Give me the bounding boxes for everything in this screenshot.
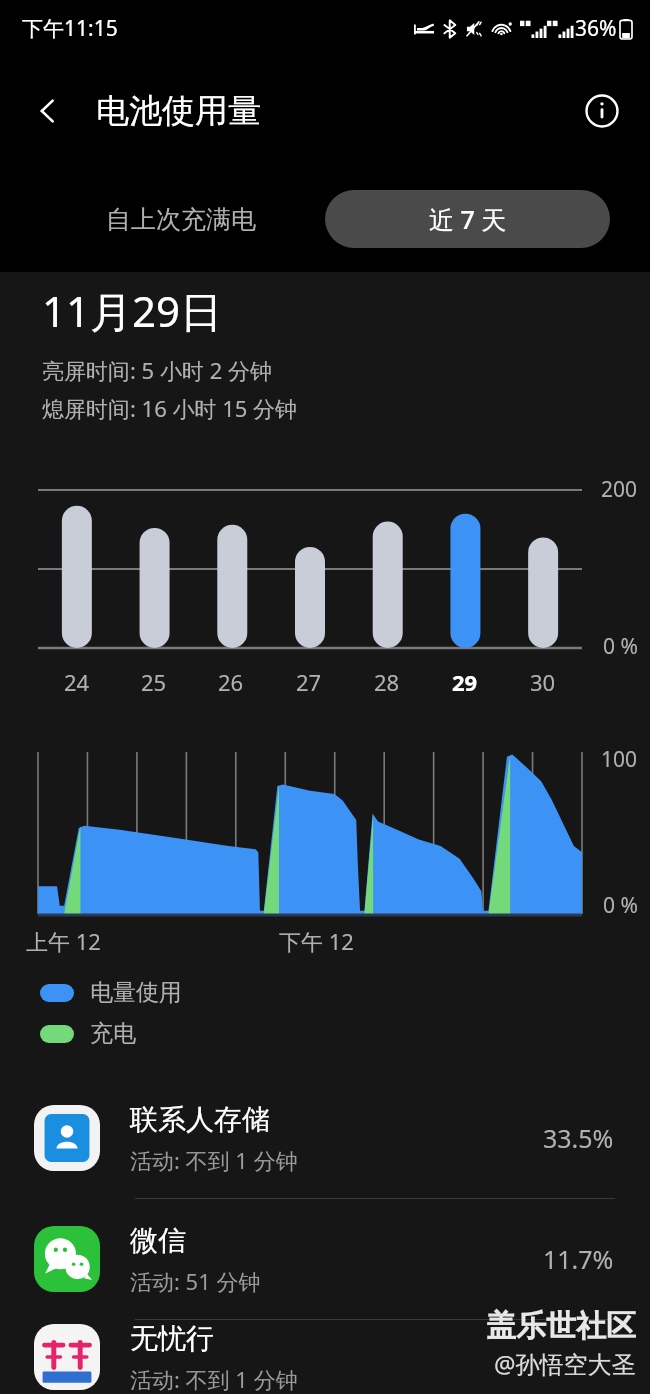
button[interactable]: 微信 (0, 1199, 650, 1319)
staticText: 200 (601, 475, 638, 504)
staticText: 27 (296, 667, 322, 697)
staticText: 24 (64, 667, 90, 697)
staticText: 熄屏时间: 16 小时 15 分钟 (42, 393, 298, 423)
staticText: 上午 12 (26, 926, 101, 956)
staticText: 电池使用量 (96, 90, 261, 132)
staticText: 微信 (130, 1223, 186, 1258)
staticText: 28 (374, 667, 400, 697)
staticText: 盖乐世社区 (486, 1307, 636, 1345)
staticText: 36% (575, 14, 617, 43)
staticText: @孙悟空大圣 (494, 1347, 636, 1380)
staticText: 电量使用 (90, 978, 182, 1007)
staticText: 活动: 51 分钟 (130, 1266, 261, 1296)
staticText: 100 (601, 745, 638, 774)
staticText: 亮屏时间: 5 小时 2 分钟 (42, 355, 272, 385)
staticText: 0 % (603, 632, 638, 661)
button[interactable]: Back (22, 85, 74, 137)
staticText: 0 % (603, 891, 638, 920)
button[interactable]: 近 7 天 (325, 190, 610, 248)
staticText: 29 (452, 667, 478, 697)
staticText: 26 (218, 667, 244, 697)
button[interactable]: 无忧行 (0, 1320, 650, 1394)
staticText: 自上次充满电 (106, 204, 256, 235)
staticText: 11月29日 (42, 282, 223, 339)
staticText: 30 (530, 667, 556, 697)
button[interactable]: 自上次充满电 (42, 190, 319, 248)
staticText: 近 7 天 (429, 202, 507, 236)
staticText: 活动: 不到 1 分钟 (130, 1145, 298, 1175)
staticText: 下午 12 (279, 926, 354, 956)
button[interactable]: Information (576, 85, 628, 137)
staticText: 11.7% (543, 1242, 614, 1276)
staticText: 无忧行 (130, 1321, 214, 1356)
staticText: 联系人存储 (130, 1102, 270, 1137)
staticText: 下午11:15 (22, 14, 118, 43)
staticText: 25 (141, 667, 167, 697)
staticText: 充电 (90, 1019, 136, 1048)
staticText: 33.5% (543, 1121, 614, 1155)
button[interactable]: 联系人存储 (0, 1078, 650, 1198)
staticText: 活动: 不到 1 分钟 (130, 1364, 298, 1394)
